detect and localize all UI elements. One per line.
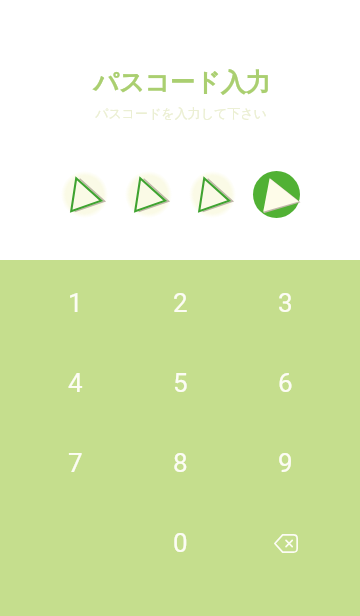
staticText: 8 <box>173 448 188 478</box>
staticText: 0 <box>173 528 188 558</box>
staticText: 2 <box>173 288 188 318</box>
staticText: 1 <box>68 288 83 318</box>
button[interactable]: 5 <box>128 343 233 423</box>
button[interactable]: 0 <box>128 503 233 583</box>
staticText: 3 <box>278 288 293 318</box>
button[interactable]: 6 <box>233 343 338 423</box>
staticText: 5 <box>173 368 188 398</box>
staticText: 9 <box>278 448 293 478</box>
staticText: パスコードを入力して下さい <box>95 105 267 121</box>
staticText: 7 <box>68 448 83 478</box>
button[interactable]: Delete <box>233 503 338 583</box>
button[interactable]: 3 <box>233 263 338 343</box>
staticText: 4 <box>68 368 83 398</box>
staticText: 6 <box>278 368 293 398</box>
button[interactable]: 4 <box>23 343 128 423</box>
button[interactable]: 2 <box>128 263 233 343</box>
button[interactable]: 8 <box>128 423 233 503</box>
button[interactable]: 7 <box>23 423 128 503</box>
button[interactable]: 1 <box>23 263 128 343</box>
button[interactable]: 9 <box>233 423 338 503</box>
staticText: パスコード入力 <box>93 67 271 98</box>
